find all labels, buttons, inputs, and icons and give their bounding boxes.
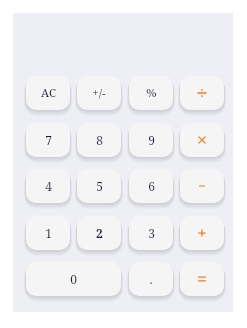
button[interactable]: Equals [180,262,224,296]
button[interactable]: AC [26,76,70,110]
button[interactable]: +/- [77,76,121,110]
button[interactable]: 3 [129,216,173,250]
button[interactable]: . [129,262,173,296]
button[interactable]: 4 [26,169,70,203]
staticText: 5 [96,178,103,194]
button[interactable]: 9 [129,123,173,157]
staticText: 6 [148,178,155,194]
staticText: 2 [96,225,103,241]
button[interactable]: 0 [26,262,121,296]
button[interactable]: 2 [77,216,121,250]
button[interactable]: Plus [180,216,224,250]
staticText: % [146,85,157,101]
button[interactable]: % [129,76,173,110]
button[interactable]: 8 [77,123,121,157]
staticText: 1 [45,225,52,241]
staticText: 9 [148,132,155,148]
staticText: +/- [92,85,106,101]
staticText: . [149,271,153,287]
button[interactable]: 1 [26,216,70,250]
staticText: 0 [70,271,77,287]
staticText: 7 [45,132,52,148]
button[interactable]: Minus [180,169,224,203]
staticText: AC [41,85,56,101]
staticText: 8 [96,132,103,148]
button[interactable]: 7 [26,123,70,157]
button[interactable]: 5 [77,169,121,203]
button[interactable]: Divide [180,76,224,110]
staticText: 3 [148,225,155,241]
staticText: 4 [45,178,52,194]
button[interactable]: Multiply [180,123,224,157]
button[interactable]: 6 [129,169,173,203]
